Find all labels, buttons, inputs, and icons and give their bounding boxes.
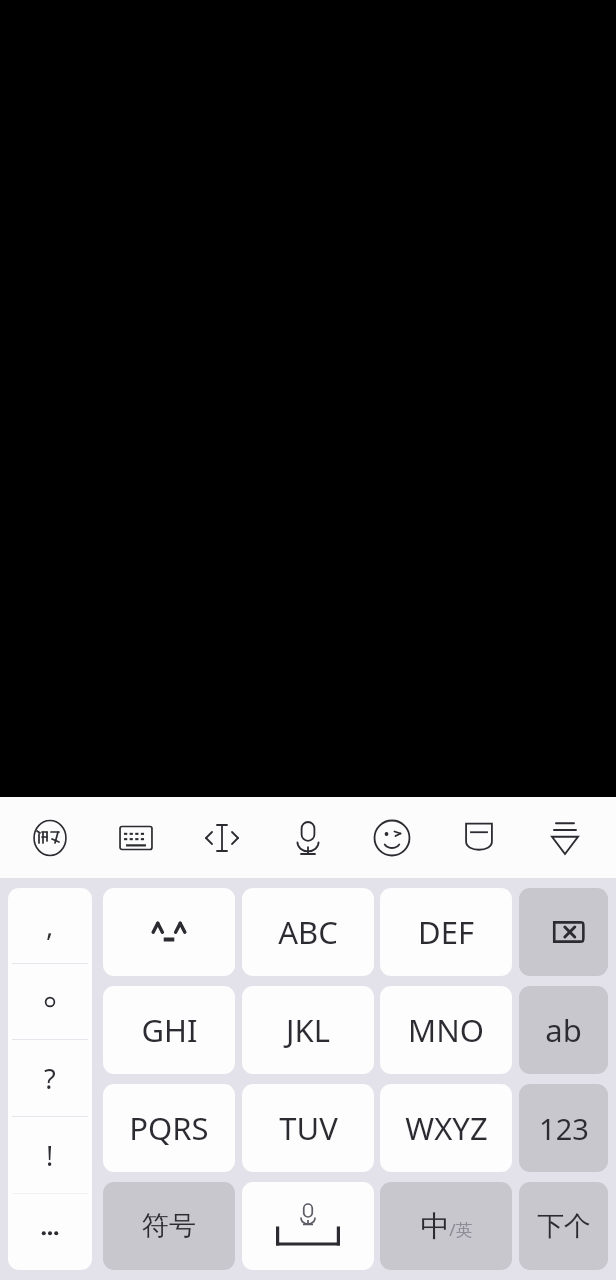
- staticText: PQRS: [129, 1107, 209, 1149]
- button[interactable]: Input method: [20, 817, 80, 859]
- button[interactable]: Voice input: [278, 817, 338, 859]
- staticText: WXYZ: [405, 1107, 488, 1149]
- button[interactable]: Backspace: [519, 888, 608, 976]
- button[interactable]: TUV: [242, 1084, 374, 1172]
- staticText: DEF: [418, 911, 474, 953]
- button[interactable]: [242, 1182, 374, 1270]
- staticText: 符号: [142, 1209, 196, 1243]
- button[interactable]: MNO: [380, 986, 512, 1074]
- staticText: GHI: [141, 1009, 198, 1051]
- button[interactable]: WXYZ: [380, 1084, 512, 1172]
- staticText: ab: [545, 1009, 582, 1051]
- button[interactable]: Cursor move: [192, 817, 252, 859]
- button[interactable]: 中/英: [380, 1182, 512, 1270]
- button[interactable]: [103, 888, 235, 976]
- button[interactable]: ABC: [242, 888, 374, 976]
- button[interactable]: ?: [8, 1040, 92, 1116]
- button[interactable]: Keyboard layout: [106, 817, 166, 859]
- button[interactable]: PQRS: [103, 1084, 235, 1172]
- button[interactable]: [8, 964, 92, 1039]
- button[interactable]: GHI: [103, 986, 235, 1074]
- button[interactable]: ,: [8, 888, 92, 963]
- button[interactable]: 符号: [103, 1182, 235, 1270]
- staticText: TUV: [279, 1107, 338, 1149]
- button[interactable]: [8, 1194, 92, 1270]
- staticText: ABC: [278, 911, 338, 953]
- button[interactable]: !: [8, 1117, 92, 1193]
- button[interactable]: 下个: [519, 1182, 608, 1270]
- staticText: 中/英: [420, 1208, 473, 1245]
- button[interactable]: DEF: [380, 888, 512, 976]
- button[interactable]: 123: [519, 1084, 608, 1172]
- staticText: 下个: [537, 1209, 591, 1243]
- button[interactable]: Clipboard: [449, 817, 509, 859]
- staticText: !: [46, 1137, 54, 1174]
- staticText: ?: [44, 1060, 56, 1097]
- button[interactable]: ab: [519, 986, 608, 1074]
- staticText: MNO: [408, 1009, 484, 1051]
- staticText: ,: [46, 907, 54, 944]
- button[interactable]: JKL: [242, 986, 374, 1074]
- button[interactable]: Collapse keyboard: [535, 817, 595, 859]
- button[interactable]: Emoji: [362, 817, 422, 859]
- staticText: 123: [539, 1109, 589, 1148]
- staticText: JKL: [286, 1009, 330, 1051]
